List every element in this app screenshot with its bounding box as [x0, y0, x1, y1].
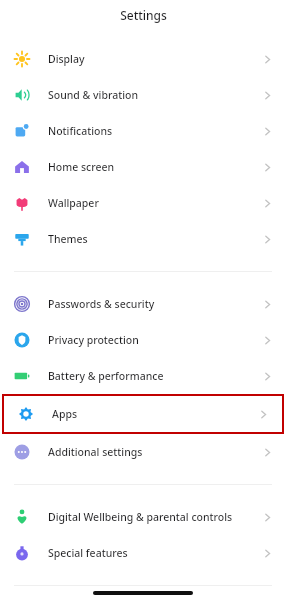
- button[interactable]: Passwords & security: [0, 286, 286, 322]
- staticText: Display: [48, 52, 85, 66]
- button[interactable]: Home screen: [0, 149, 286, 185]
- button[interactable]: Additional settings: [0, 434, 286, 470]
- staticText: Sound & vibration: [48, 88, 139, 102]
- staticText: Special features: [48, 546, 128, 560]
- button[interactable]: Special features: [0, 535, 286, 571]
- staticText: Additional settings: [48, 445, 143, 459]
- button[interactable]: Themes: [0, 221, 286, 257]
- staticText: Notifications: [48, 124, 113, 138]
- button[interactable]: Digital Wellbeing & parental controls: [0, 499, 286, 535]
- staticText: Settings: [120, 7, 167, 23]
- staticText: Wallpaper: [48, 196, 99, 210]
- button[interactable]: Notifications: [0, 113, 286, 149]
- button[interactable]: Display: [0, 41, 286, 77]
- staticText: Digital Wellbeing & parental controls: [48, 510, 233, 524]
- button[interactable]: Apps: [4, 396, 282, 432]
- button[interactable]: Battery & performance: [0, 358, 286, 394]
- staticText: Battery & performance: [48, 369, 164, 383]
- button[interactable]: Sound & vibration: [0, 77, 286, 113]
- button[interactable]: Wallpaper: [0, 185, 286, 221]
- staticText: Themes: [48, 232, 88, 246]
- button[interactable]: Privacy protection: [0, 322, 286, 358]
- staticText: Privacy protection: [48, 333, 139, 347]
- staticText: Home screen: [48, 160, 115, 174]
- staticText: Apps: [52, 407, 78, 421]
- staticText: Passwords & security: [48, 297, 155, 311]
